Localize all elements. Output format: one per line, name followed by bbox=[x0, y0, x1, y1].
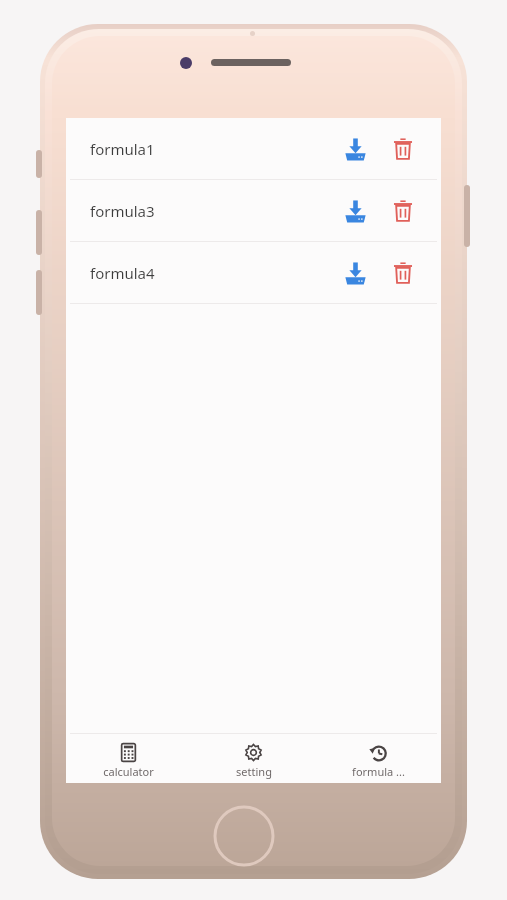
button[interactable]: Delete formula3 bbox=[383, 191, 423, 231]
staticText: setting bbox=[236, 764, 272, 779]
staticText: formula ... bbox=[352, 764, 405, 779]
button[interactable]: calculator bbox=[66, 739, 191, 779]
button[interactable]: Download formula3 bbox=[335, 191, 375, 231]
staticText: formula1 bbox=[90, 139, 155, 159]
button[interactable]: formula4 bbox=[66, 242, 441, 303]
button[interactable]: formula ... bbox=[316, 739, 441, 779]
button[interactable]: formula1 bbox=[66, 118, 441, 179]
button[interactable]: Delete formula4 bbox=[383, 253, 423, 293]
staticText: formula3 bbox=[90, 201, 155, 221]
button[interactable]: setting bbox=[191, 739, 316, 779]
button[interactable]: Delete formula1 bbox=[383, 129, 423, 169]
button[interactable]: Download formula4 bbox=[335, 253, 375, 293]
button[interactable]: formula3 bbox=[66, 180, 441, 241]
staticText: calculator bbox=[103, 764, 154, 779]
staticText: formula4 bbox=[90, 263, 155, 283]
button[interactable]: Download formula1 bbox=[335, 129, 375, 169]
